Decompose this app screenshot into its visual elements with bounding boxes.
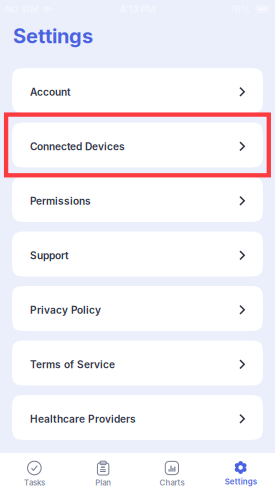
staticText: Permissions [30, 195, 91, 207]
staticText: Support [30, 249, 69, 262]
button[interactable]: Charts [137, 453, 206, 489]
button[interactable]: Healthcare Providers [12, 395, 263, 440]
button[interactable]: Settings [206, 453, 275, 489]
staticText: Terms of Service [30, 358, 115, 371]
staticText: Connected Devices [30, 140, 125, 153]
staticText: Privacy Policy [30, 304, 101, 316]
staticText: Charts [159, 478, 184, 487]
button[interactable]: Account [12, 68, 263, 113]
button[interactable]: Tasks [0, 453, 69, 489]
button[interactable]: Privacy Policy [12, 286, 263, 331]
staticText: Settings [13, 24, 93, 48]
staticText: Healthcare Providers [30, 413, 136, 425]
staticText: Tasks [24, 478, 45, 487]
staticText: 4:13 PM [119, 3, 155, 15]
staticText: Plan [95, 478, 111, 487]
staticText: Settings [225, 477, 257, 486]
button[interactable]: Permissions [12, 177, 263, 222]
button[interactable]: Plan [69, 453, 138, 489]
staticText: Account [30, 86, 71, 98]
staticText: No SIM [5, 3, 39, 15]
button[interactable]: Terms of Service [12, 340, 263, 385]
button[interactable]: Connected Devices [12, 122, 263, 167]
button[interactable]: Support [12, 231, 263, 276]
